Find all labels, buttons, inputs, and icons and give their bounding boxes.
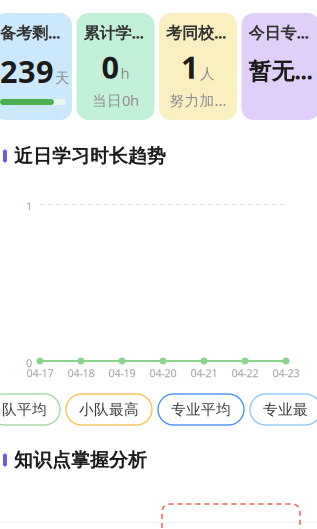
staticText: 04-22 [231, 366, 258, 380]
staticText: 累计学... [83, 22, 143, 43]
button[interactable]: 专业最 [250, 394, 317, 425]
staticText: 近日学习时长趋势 [14, 144, 166, 167]
staticText: 考同校... [166, 22, 226, 43]
staticText: 专业最 [263, 400, 308, 418]
staticText: 今日专... [248, 22, 308, 43]
staticText: 小队最高 [79, 400, 139, 418]
button[interactable]: 备考剩... [0, 13, 72, 120]
staticText: 1 [181, 46, 199, 87]
staticText: 队平均 [2, 400, 47, 418]
button[interactable]: 考同校... [159, 13, 237, 120]
staticText: 0 [26, 356, 32, 370]
staticText: 天 [55, 69, 70, 87]
staticText: 04-21 [190, 366, 217, 380]
staticText: 备考剩... [0, 22, 60, 43]
button[interactable]: 累计学... [76, 13, 154, 120]
button[interactable]: 专业平均 [158, 394, 244, 425]
staticText: 04-19 [108, 366, 135, 380]
staticText: 04-17 [26, 366, 53, 380]
button[interactable]: 今日专... [241, 13, 317, 120]
button[interactable]: 小队最高 [66, 394, 152, 425]
staticText: 1 [26, 199, 32, 213]
staticText: 专业平均 [171, 400, 231, 418]
staticText: 当日0h [92, 90, 139, 110]
staticText: 知识点掌握分析 [14, 448, 147, 471]
staticText: h [120, 63, 129, 83]
staticText: 04-20 [149, 366, 176, 380]
staticText: 239 [0, 51, 54, 91]
staticText: 04-23 [272, 366, 299, 380]
button[interactable]: 队平均 [0, 394, 60, 425]
staticText: 人 [200, 65, 215, 83]
staticText: 努力加... [169, 90, 226, 110]
staticText: 04-18 [67, 366, 94, 380]
staticText: 暂无... [248, 56, 312, 86]
staticText: 0 [101, 46, 119, 87]
